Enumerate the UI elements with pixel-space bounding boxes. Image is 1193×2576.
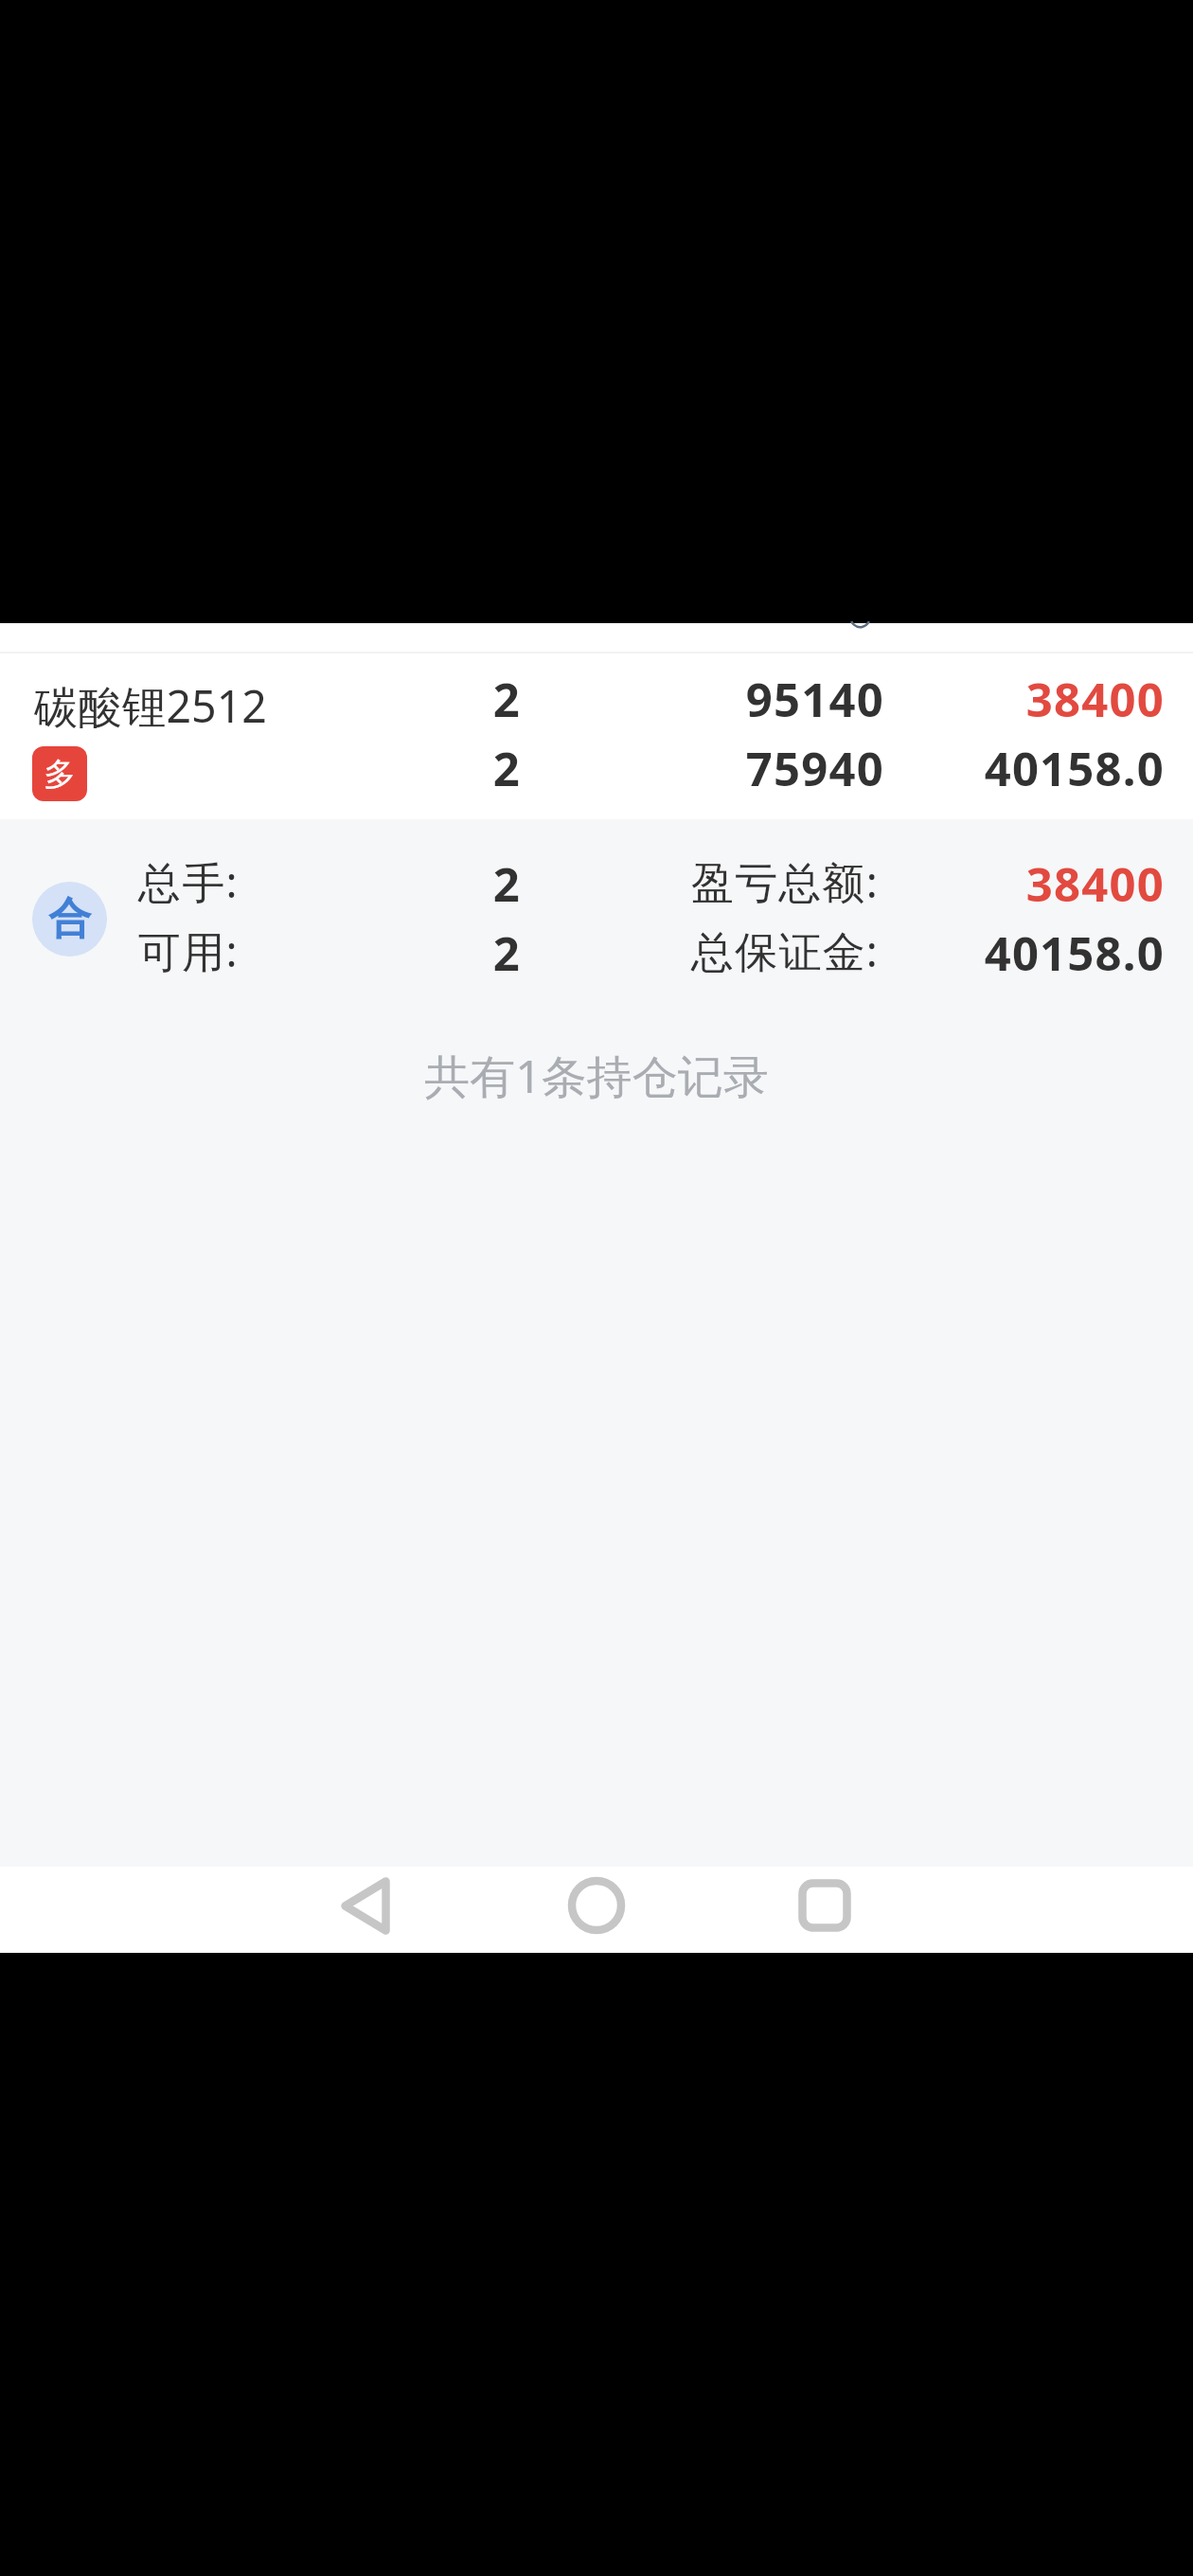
staticText: 碳酸锂2512: [34, 675, 267, 736]
staticText: 2: [331, 668, 521, 731]
button[interactable]: Home: [497, 1867, 696, 1953]
staticText: 38400: [843, 668, 1165, 731]
button[interactable]: 合: [0, 819, 1193, 1009]
staticText: 多: [44, 754, 76, 795]
staticText: 75940: [600, 737, 884, 800]
staticText: 38400: [843, 852, 1165, 916]
staticText: 40158.0: [843, 921, 1165, 985]
button[interactable]: 碳酸锂2512: [0, 653, 1193, 819]
button[interactable]: Back: [266, 1867, 465, 1953]
staticText: 2: [331, 737, 521, 800]
staticText: 总手:: [138, 852, 239, 910]
staticText: 合: [48, 892, 91, 946]
staticText: 95140: [600, 668, 884, 731]
staticText: 总保证金:: [691, 921, 880, 979]
staticText: 可用:: [138, 921, 239, 979]
staticText: 2: [331, 852, 521, 916]
button[interactable]: Recents: [725, 1867, 924, 1953]
staticText: 盈亏总额:: [691, 852, 880, 910]
staticText: 40158.0: [843, 737, 1165, 800]
staticText: 2: [331, 921, 521, 985]
staticText: 共有1条持仓记录: [0, 1045, 1193, 1107]
